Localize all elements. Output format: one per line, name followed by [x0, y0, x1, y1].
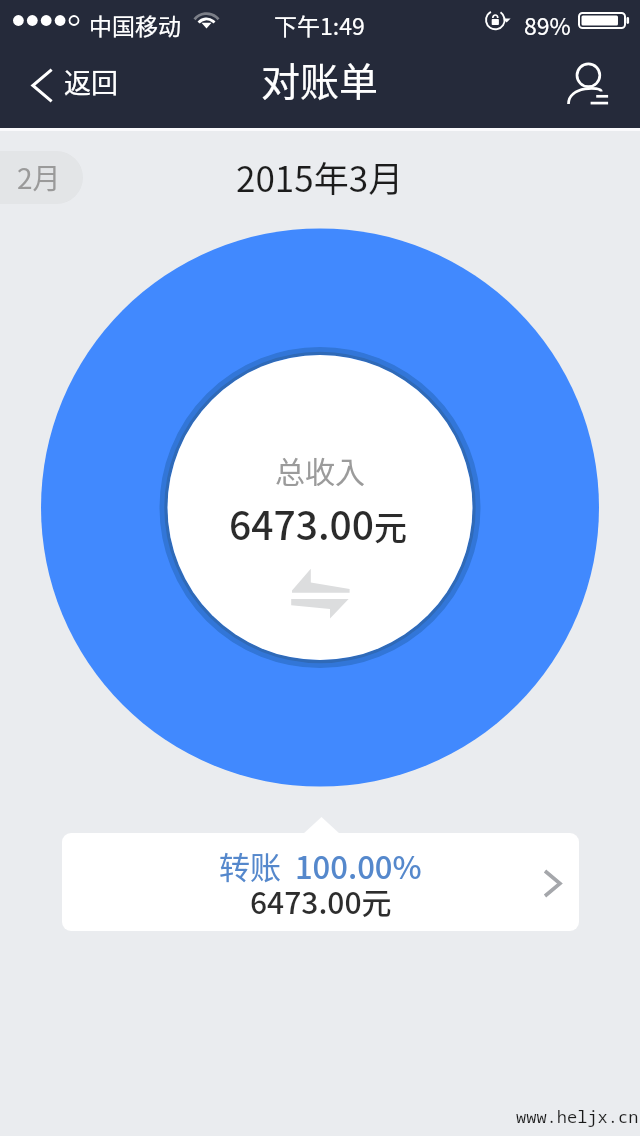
staticText: 89% [524, 8, 571, 41]
staticText: 对账单 [261, 51, 379, 107]
staticText: 6473.00元 [250, 879, 392, 922]
staticText: 6473.00元 [229, 495, 408, 551]
staticText: 2015年3月 [236, 151, 404, 202]
button[interactable]: 转账 100.00% [62, 833, 579, 931]
button[interactable]: 返回 [16, 52, 136, 111]
button[interactable]: 2月 [0, 151, 83, 204]
staticText: 返回 [64, 62, 118, 101]
staticText: 下午1:49 [274, 8, 365, 41]
staticText: 总收入 [275, 448, 365, 491]
staticText: 中国移动 [89, 8, 181, 41]
staticText: www.heljx.cn [516, 1105, 639, 1128]
staticText: 转账 100.00% [219, 843, 422, 888]
button[interactable]: Account [556, 50, 640, 124]
staticText: 2月 [17, 157, 61, 198]
